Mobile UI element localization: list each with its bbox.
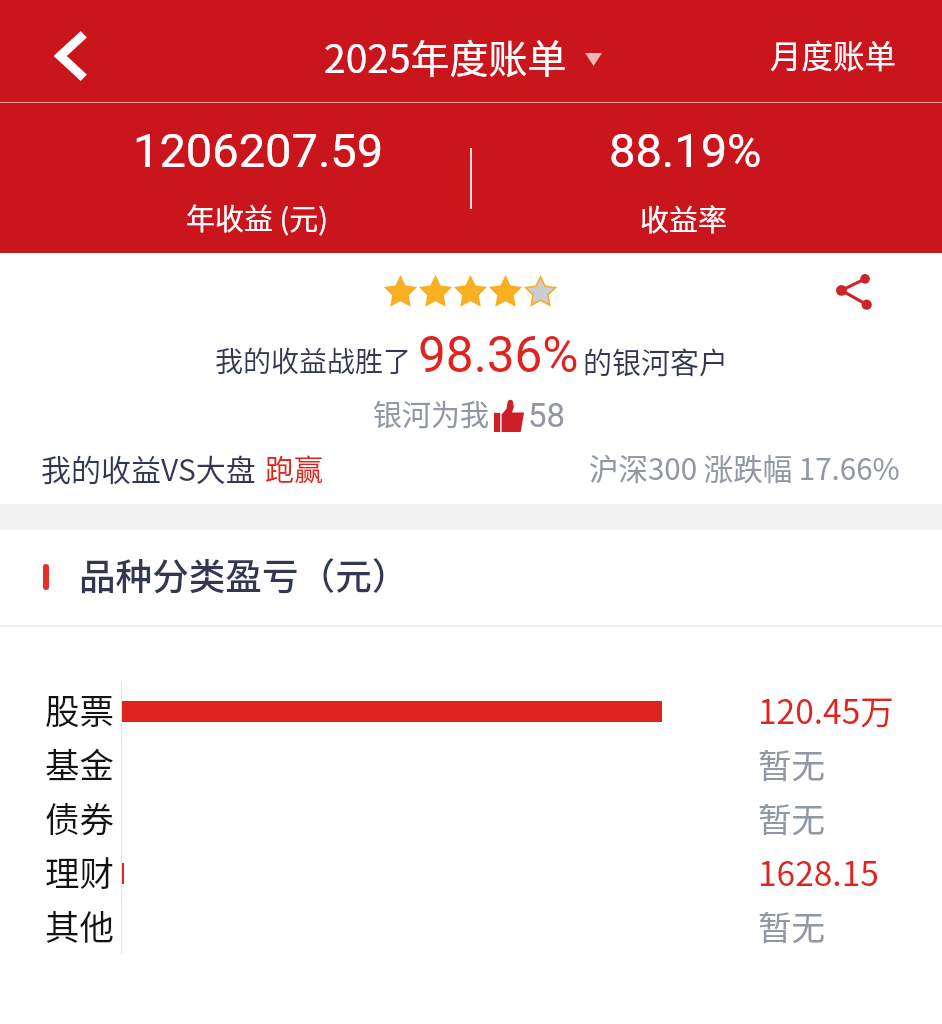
staticText: 暂无: [758, 739, 825, 788]
staticText: 股票: [45, 684, 114, 734]
staticText: 98.36%: [418, 326, 579, 384]
staticText: 1206207.59: [133, 123, 384, 178]
staticText: 沪深300 涨跌幅 17.66%: [589, 446, 900, 489]
button[interactable]: Back: [34, 18, 110, 94]
staticText: 暂无: [758, 793, 825, 842]
staticText: 债券: [45, 792, 114, 842]
staticText: 我的收益VS大盘: [41, 446, 256, 489]
staticText: 银河为我: [373, 392, 490, 434]
button[interactable]: Share: [820, 258, 888, 326]
staticText: 我的收益战胜了: [215, 340, 412, 381]
staticText: 跑赢: [265, 447, 324, 489]
staticText: 理财: [45, 846, 114, 896]
staticText: 基金: [45, 738, 114, 788]
staticText: 的银河客户: [583, 340, 729, 382]
staticText: 暂无: [758, 901, 825, 950]
staticText: 月度账单: [770, 31, 897, 77]
staticText: 120.45万: [758, 685, 894, 734]
staticText: 年收益 (元): [186, 196, 329, 238]
staticText: 其他: [45, 900, 114, 950]
button[interactable]: 月度账单: [754, 19, 913, 89]
staticText: 2025年度账单: [324, 28, 567, 84]
button[interactable]: 2025年度账单: [308, 16, 618, 96]
staticText: 1628.15: [758, 847, 879, 896]
staticText: 收益率: [640, 197, 728, 239]
staticText: 品种分类盈亏（元）: [79, 548, 409, 601]
staticText: 58: [528, 396, 566, 435]
staticText: 88.19%: [609, 123, 762, 178]
